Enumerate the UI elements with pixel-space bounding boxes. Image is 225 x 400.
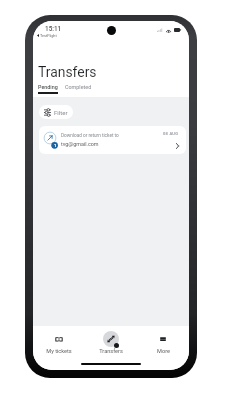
staticText: Download or return ticket to — [61, 133, 119, 139]
staticText: Pending — [38, 84, 58, 90]
button[interactable]: Pending — [36, 83, 60, 95]
button[interactable]: Filter — [39, 105, 73, 119]
staticText: 08 AUG — [163, 131, 179, 136]
staticText: Filter — [54, 109, 68, 116]
staticText: Transfers — [38, 64, 97, 80]
button[interactable]: More — [137, 331, 189, 355]
button[interactable]: Completed — [63, 83, 94, 91]
button[interactable]: Transfers — [85, 331, 137, 355]
staticText: tvg@gmail.com — [61, 141, 99, 147]
staticText: TestFlight — [40, 33, 57, 37]
staticText: Completed — [65, 84, 92, 90]
staticText: My tickets — [46, 348, 72, 355]
staticText: More — [157, 348, 170, 355]
button[interactable]: My tickets — [33, 331, 85, 355]
staticText: Transfers — [99, 348, 123, 355]
staticText: 1 — [54, 143, 57, 148]
staticText: 15:11 — [45, 25, 62, 33]
button[interactable]: 1 — [39, 126, 186, 154]
